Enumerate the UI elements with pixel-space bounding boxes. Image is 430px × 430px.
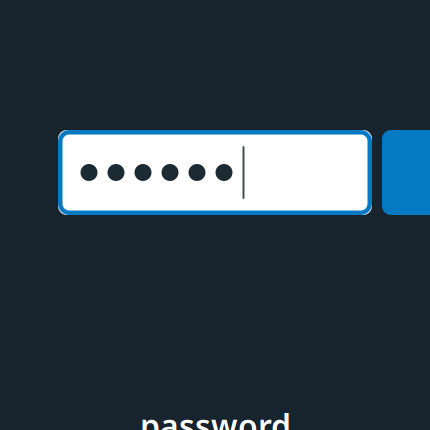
button[interactable]: Password (58, 130, 372, 215)
button[interactable]: Submit (382, 130, 430, 215)
staticText: password (140, 404, 291, 430)
